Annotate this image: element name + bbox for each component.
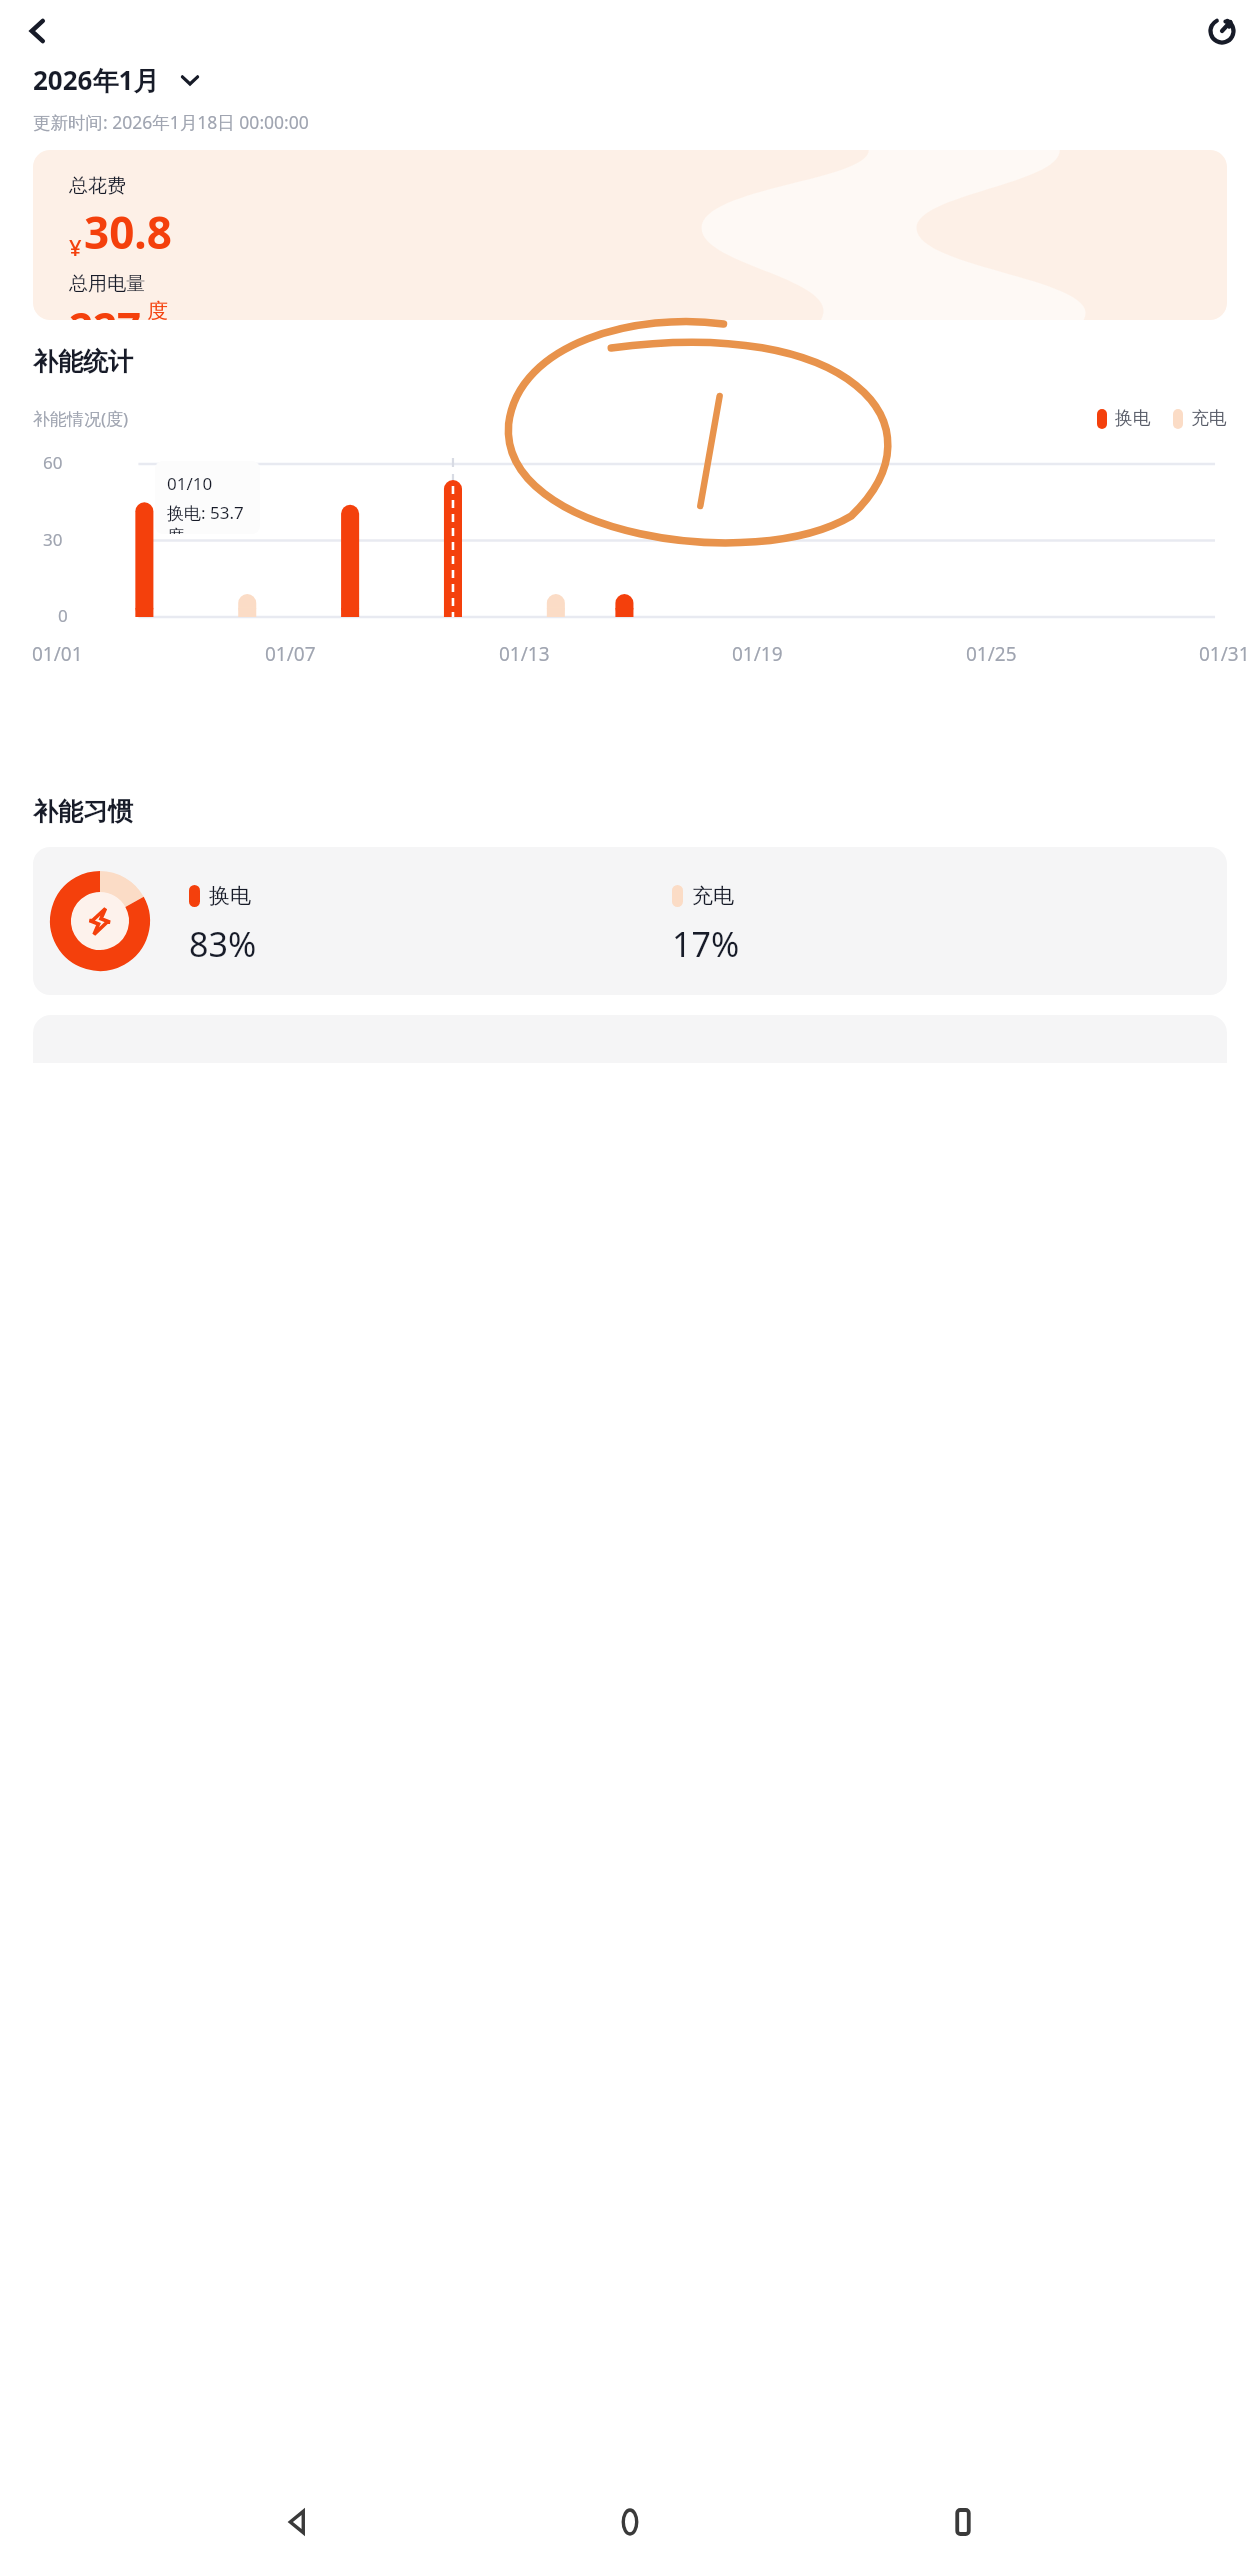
staticText: 83% — [189, 921, 257, 967]
staticText: ¥ — [69, 232, 82, 262]
staticText: 补能情况(度) — [33, 407, 129, 430]
staticText: 度 — [147, 298, 168, 320]
button[interactable]: Back — [10, 3, 66, 59]
staticText: 01/01 — [32, 641, 83, 667]
staticText: 补能统计 — [33, 346, 133, 377]
staticText: 总用电量 — [69, 272, 145, 296]
button[interactable]: Refresh — [1194, 3, 1250, 59]
staticText: 01/07 — [265, 641, 316, 667]
staticText: 227 — [69, 298, 142, 320]
staticText: 换电: 53.7度 — [167, 501, 260, 534]
staticText: 更新时间: 2026年1月18日 00:00:00 — [33, 110, 309, 134]
staticText: 换电 — [1115, 407, 1151, 430]
button[interactable]: 01/10 — [155, 461, 260, 534]
staticText: 换电 — [209, 883, 251, 909]
staticText: 总花费 — [69, 174, 126, 198]
staticText: 01/31 — [1199, 641, 1250, 667]
button[interactable]: Back — [263, 2487, 333, 2557]
staticText: 充电 — [1191, 407, 1227, 430]
staticText: 01/19 — [732, 641, 783, 667]
staticText: 2026年1月 — [33, 62, 160, 98]
staticText: 补能习惯 — [33, 796, 133, 827]
staticText: 0 — [58, 604, 68, 627]
staticText: 30.8 — [84, 202, 172, 262]
staticText: 01/25 — [966, 641, 1017, 667]
button[interactable]: 充电 — [672, 883, 1227, 967]
button[interactable]: Recents — [928, 2487, 998, 2557]
button[interactable]: 换电 — [189, 883, 672, 967]
button[interactable]: 总花费 — [33, 150, 1227, 320]
staticText: 01/10 — [167, 472, 213, 495]
button[interactable]: Home — [595, 2487, 665, 2557]
staticText: 17% — [672, 921, 740, 967]
button[interactable]: 2026年1月 — [33, 62, 200, 98]
button[interactable]: 换电 — [1097, 407, 1151, 430]
staticText: 60 — [43, 451, 63, 474]
staticText: 01/13 — [499, 641, 550, 667]
staticText: 充电 — [692, 883, 734, 909]
button[interactable]: 充电 — [1173, 407, 1227, 430]
button[interactable]: 换电 — [33, 847, 1227, 995]
staticText: 30 — [43, 528, 63, 551]
